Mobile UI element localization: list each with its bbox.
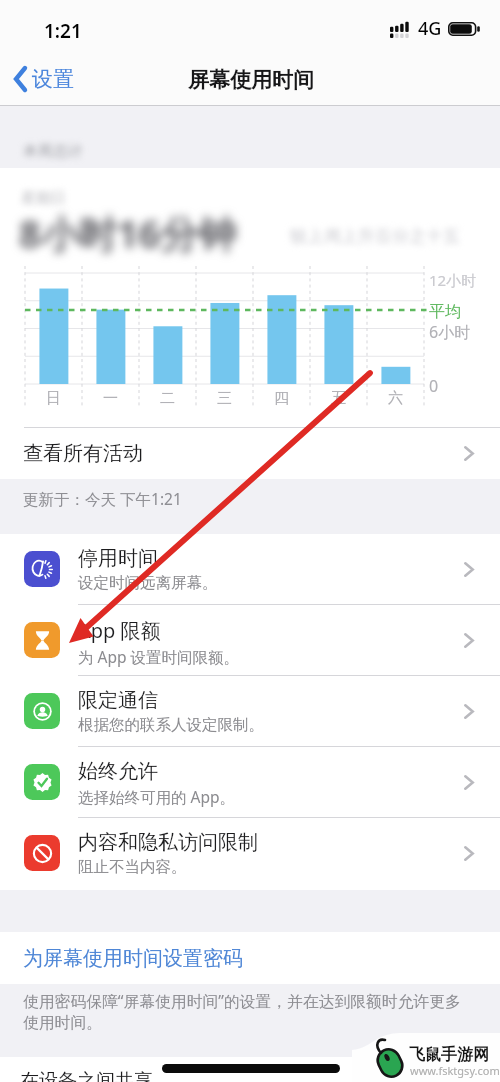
staticText: 0 [429, 375, 439, 397]
staticText: 12小时 [429, 270, 477, 290]
staticText: 选择始终可用的 App。 [78, 786, 235, 807]
staticText: 4G [418, 16, 442, 41]
staticText: 更新于：今天 下午1:21 [23, 488, 182, 509]
staticText: www.fsktgsy.com [410, 1063, 500, 1078]
staticText: 根据您的联系人设定限制。 [78, 715, 264, 735]
button[interactable]: 始终允许 [0, 747, 500, 818]
staticText: 为屏幕使用时间设置密码 [23, 946, 243, 971]
staticText: 1:21 [44, 18, 82, 44]
staticText: 三 [217, 389, 232, 408]
staticText: 较上周上升百分之十五 [290, 226, 460, 247]
button[interactable]: 查看所有活动 [0, 428, 500, 479]
staticText: 6小时 [429, 321, 471, 343]
staticText: 在设备之间共享 [20, 1069, 153, 1082]
staticText: 停用时间 [78, 546, 158, 571]
button[interactable]: App 限额 [0, 605, 500, 676]
staticText: 星期日 [21, 189, 66, 208]
button[interactable]: 为屏幕使用时间设置密码 [0, 932, 500, 984]
staticText: 五 [331, 389, 346, 408]
staticText: 设置 [32, 66, 74, 92]
staticText: 设定时间远离屏幕。 [78, 573, 218, 593]
staticText: 始终允许 [78, 759, 158, 784]
staticText: App 限额 [78, 617, 161, 644]
staticText: 六 [388, 389, 403, 408]
staticText: 平均 [429, 302, 461, 322]
button[interactable]: 在设备之间共享 [0, 1057, 500, 1082]
staticText: 为 App 设置时间限额。 [78, 646, 240, 667]
staticText: 使用密码保障“屏幕使用时间”的设置，并在达到限额时允许更多 使用时间。 [23, 990, 461, 1033]
staticText: 一 [103, 389, 118, 408]
staticText: 二 [160, 389, 175, 408]
staticText: 8小时16分钟 [19, 207, 237, 259]
button[interactable]: 限定通信 [0, 676, 500, 747]
staticText: 飞鼠手游网 [409, 1045, 489, 1065]
staticText: 日 [46, 389, 61, 408]
staticText: 阻止不当内容。 [78, 857, 187, 877]
button[interactable]: 内容和隐私访问限制 [0, 818, 500, 889]
staticText: 限定通信 [78, 688, 158, 713]
staticText: 屏幕使用时间 [188, 67, 314, 93]
staticText: 本周总计 [23, 142, 83, 161]
button[interactable]: 停用时间 [0, 534, 500, 605]
staticText: 查看所有活动 [23, 441, 143, 466]
staticText: 内容和隐私访问限制 [78, 830, 258, 855]
staticText: 四 [274, 389, 289, 408]
button[interactable]: 设置 [0, 62, 88, 96]
